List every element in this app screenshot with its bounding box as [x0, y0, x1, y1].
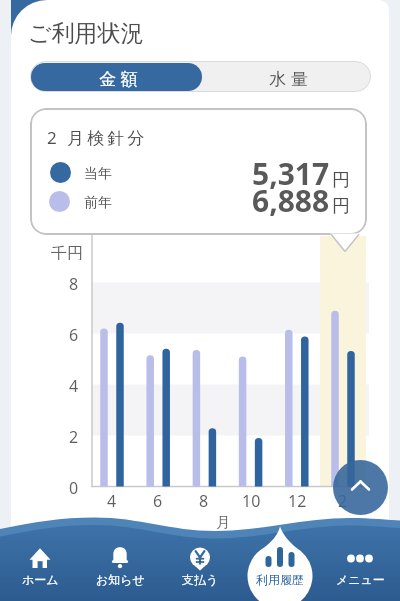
staticText: 千円 [51, 244, 83, 260]
staticText: 6 [153, 490, 163, 509]
staticText: 4 [69, 375, 79, 395]
staticText: 2 [338, 490, 348, 509]
staticText: 2 [69, 426, 79, 446]
staticText: 前年 [84, 194, 112, 212]
staticText: 8 [69, 273, 79, 293]
staticText: 6,888 [252, 180, 330, 216]
staticText: 6 [69, 324, 79, 344]
button[interactable] [240, 530, 320, 601]
button[interactable] [80, 530, 160, 601]
staticText: ホーム [22, 572, 59, 587]
button[interactable] [0, 530, 80, 601]
staticText: 12 [288, 490, 307, 509]
staticText: メニュー [336, 572, 385, 587]
staticText: 支払う [182, 572, 219, 587]
staticText: 2 月検針分 [47, 126, 148, 149]
staticText: お知らせ [96, 572, 145, 587]
staticText: 10 [242, 490, 261, 509]
staticText: 4 [107, 490, 117, 509]
staticText: ご利用状況 [28, 19, 144, 48]
staticText: 円 [332, 169, 350, 192]
staticText: 0 [69, 477, 79, 497]
staticText: 利用履歴 [256, 572, 304, 587]
staticText: 8 [199, 490, 209, 509]
staticText: 月 [216, 514, 230, 532]
staticText: 当年 [84, 165, 112, 183]
button[interactable] [160, 530, 240, 601]
staticText: 5,317 [252, 153, 330, 189]
button[interactable]: 水量 [202, 63, 370, 91]
staticText: 円 [332, 195, 350, 218]
button[interactable] [333, 460, 388, 515]
button[interactable] [320, 530, 400, 601]
staticText: 金額 [97, 69, 140, 90]
button[interactable]: 金額 [31, 63, 202, 91]
staticText: 水量 [267, 69, 310, 90]
